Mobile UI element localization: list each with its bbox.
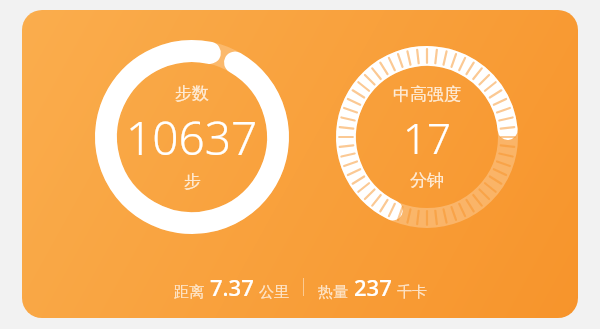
button[interactable]: 步数 <box>22 10 578 318</box>
staticText: 237 <box>354 272 392 302</box>
staticText: 7.37 <box>210 272 254 302</box>
staticText: 千卡 <box>397 283 427 302</box>
staticText: 10637 <box>126 106 258 169</box>
staticText: 中高强度 <box>393 84 461 105</box>
staticText: 热量 <box>318 283 348 302</box>
staticText: 步 <box>184 171 201 192</box>
staticText: 17 <box>403 109 451 166</box>
staticText: 公里 <box>259 283 289 302</box>
staticText: 步数 <box>175 83 209 104</box>
staticText: 分钟 <box>410 170 444 191</box>
staticText: 距离 <box>174 283 204 302</box>
